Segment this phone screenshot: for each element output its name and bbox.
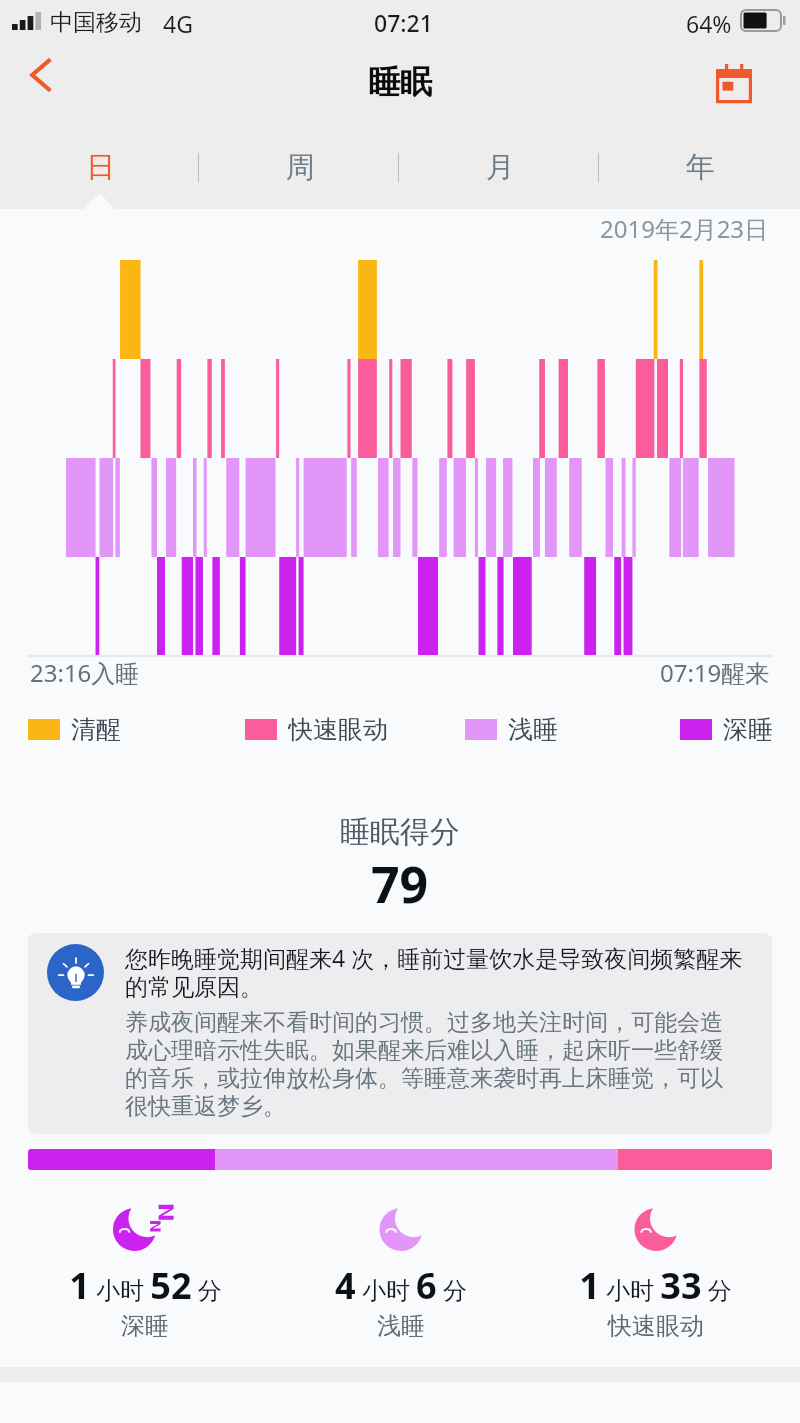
staticText: 浅睡: [377, 1311, 425, 1341]
staticText: 睡眠: [368, 62, 432, 102]
staticText: 深睡: [121, 1311, 169, 1341]
staticText: 清醒: [71, 714, 121, 744]
staticText: 07:19醒来: [660, 656, 770, 689]
staticText: 睡眠得分: [340, 813, 460, 851]
staticText: 07:21: [374, 7, 433, 38]
staticText: 年: [686, 149, 715, 186]
staticText: 1 小时 52 分: [69, 1261, 222, 1310]
button[interactable]: 快速眼动: [245, 714, 388, 744]
button[interactable]: 月: [400, 125, 600, 209]
button[interactable]: 浅睡: [465, 714, 558, 744]
button[interactable]: 清醒: [28, 714, 121, 744]
button[interactable]: 周: [200, 125, 400, 209]
staticText: 快速眼动: [608, 1311, 704, 1341]
staticText: 4G: [163, 8, 193, 39]
button[interactable]: 深睡: [680, 714, 773, 744]
staticText: 2019年2月23日: [600, 212, 769, 245]
staticText: 快速眼动: [288, 714, 388, 744]
button[interactable]: 年: [600, 125, 800, 209]
staticText: 养成夜间醒来不看时间的习惯。过多地关注时间，可能会造成心理暗示性失眠。如果醒来后…: [125, 1008, 745, 1121]
button[interactable]: Calendar: [712, 62, 756, 106]
button[interactable]: 日: [0, 125, 200, 209]
staticText: 1 小时 33 分: [579, 1261, 732, 1310]
staticText: 4 小时 6 分: [335, 1261, 467, 1310]
staticText: 周: [286, 149, 315, 186]
staticText: 深睡: [723, 714, 773, 744]
staticText: 浅睡: [508, 714, 558, 744]
staticText: 64%: [686, 8, 732, 39]
staticText: 日: [86, 149, 115, 186]
staticText: 月: [486, 149, 515, 186]
button[interactable]: Back: [10, 45, 70, 105]
staticText: 23:16入睡: [30, 656, 140, 689]
button[interactable]: 您昨晚睡觉期间醒来4 次，睡前过量饮水是导致夜间频繁醒来的常见原因。: [28, 933, 772, 1134]
staticText: 中国移动: [50, 8, 142, 37]
staticText: 您昨晚睡觉期间醒来4 次，睡前过量饮水是导致夜间频繁醒来的常见原因。: [125, 942, 745, 1002]
staticText: 79: [371, 850, 429, 918]
